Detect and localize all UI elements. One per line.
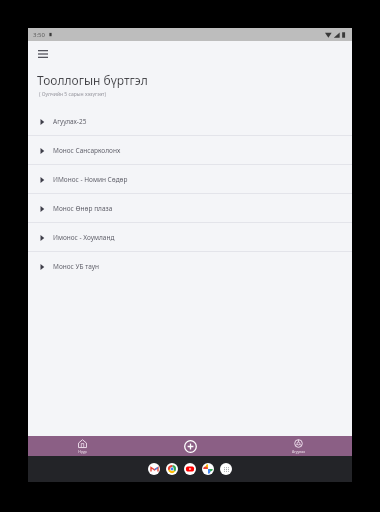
staticText: Монос Өнөр плаза [53, 204, 113, 213]
button[interactable]: Menu [35, 46, 51, 62]
button[interactable]: Монос Сансарколонх [28, 136, 352, 165]
button[interactable]: Add [136, 436, 244, 456]
button[interactable]: All apps [220, 463, 232, 475]
staticText: Агуулах [292, 449, 305, 454]
staticText: Монос УБ таун [53, 262, 100, 271]
button[interactable]: Gmail [148, 463, 160, 475]
staticText: ИМонос - Номин Сөдөр [53, 175, 128, 184]
button[interactable]: Имонос - Хоумланд [28, 223, 352, 252]
button[interactable]: Photos [202, 463, 214, 475]
staticText: Тооллогын бүртгэл [37, 72, 148, 88]
staticText: 3:50 [33, 31, 45, 39]
staticText: Монос Сансарколонх [53, 146, 121, 155]
button[interactable]: Нүүр [28, 436, 136, 456]
staticText: ( Оулчийн 5 сарын хэзүгээт) [39, 91, 106, 98]
button[interactable]: YouTube [184, 463, 196, 475]
button[interactable]: Монос УБ таун [28, 252, 352, 281]
button[interactable]: Chrome [166, 463, 178, 475]
staticText: Агуулах-25 [53, 117, 87, 126]
staticText: Нүүр [78, 449, 87, 454]
staticText: Имонос - Хоумланд [53, 233, 115, 242]
button[interactable]: Агуулах-25 [28, 107, 352, 136]
button[interactable]: Агуулах [244, 436, 352, 456]
button[interactable]: ИМонос - Номин Сөдөр [28, 165, 352, 194]
button[interactable]: Монос Өнөр плаза [28, 194, 352, 223]
